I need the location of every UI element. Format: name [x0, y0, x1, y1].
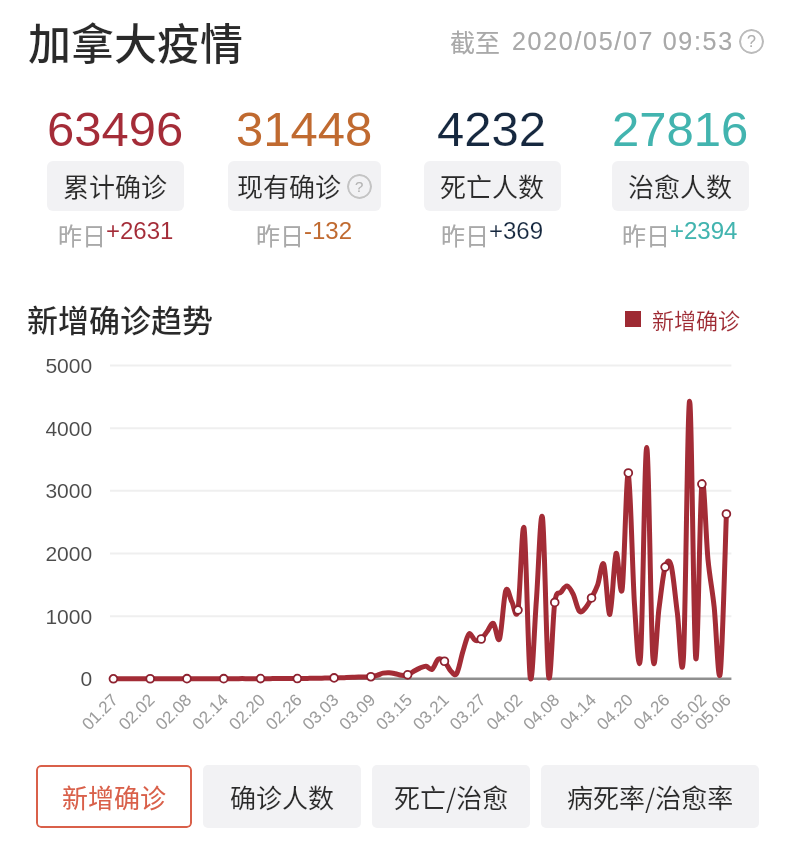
staticText: 63496	[47, 102, 184, 157]
staticText: 新增确诊	[62, 778, 167, 816]
staticText: 昨日	[58, 217, 106, 252]
button[interactable]: 新增确诊	[36, 765, 192, 828]
staticText: 死亡人数	[440, 167, 545, 205]
staticText: 27816	[612, 102, 749, 157]
staticText: +2631	[106, 217, 174, 244]
button[interactable]: 数据说明	[739, 29, 764, 54]
staticText: 确诊人数	[230, 778, 335, 816]
staticText: 截至	[450, 23, 501, 59]
button[interactable]: 31448	[210, 102, 398, 252]
staticText: ?	[355, 178, 364, 195]
staticText: 病死率/治愈率	[567, 778, 734, 816]
staticText: +369	[489, 217, 544, 244]
button[interactable]: 63496	[21, 102, 210, 252]
staticText: -132	[304, 217, 353, 244]
staticText: 新增确诊	[652, 303, 741, 335]
button[interactable]: 4232	[398, 102, 586, 252]
staticText: 死亡/治愈	[394, 778, 509, 816]
staticText: 新增确诊趋势	[27, 296, 213, 341]
staticText: 昨日	[256, 217, 304, 252]
button[interactable]: 死亡/治愈	[372, 765, 530, 828]
staticText: 4232	[437, 102, 547, 157]
staticText: 累计确诊	[63, 167, 168, 205]
staticText: 现有确诊	[237, 167, 342, 205]
button[interactable]: 确诊人数	[203, 765, 361, 828]
staticText: 昨日	[441, 217, 489, 252]
staticText: ?	[747, 33, 756, 51]
staticText: 昨日	[622, 217, 670, 252]
staticText: +2394	[670, 217, 738, 244]
staticText: 2020/05/07 09:53	[512, 27, 734, 55]
staticText: 31448	[236, 102, 373, 157]
button[interactable]: 病死率/治愈率	[541, 765, 759, 828]
staticText: 加拿大疫情	[28, 10, 243, 72]
button[interactable]: 新增确诊	[625, 299, 741, 339]
staticText: 治愈人数	[628, 167, 733, 205]
button[interactable]: 27816	[586, 102, 774, 252]
